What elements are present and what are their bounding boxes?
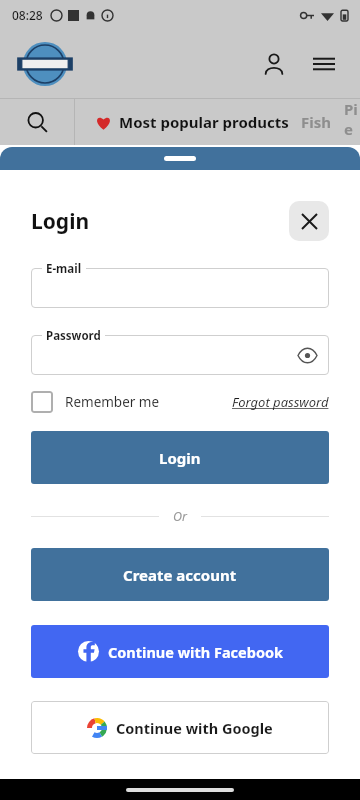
button[interactable]: Login [31,431,329,484]
staticText: Fish [301,112,332,132]
button[interactable]: Search [0,99,74,145]
staticText: Forgot password [232,393,329,411]
button[interactable] [31,268,329,308]
button[interactable]: Continue with Facebook [31,625,329,678]
staticText: 08:28 [12,7,43,23]
staticText: Continue with Google [116,718,273,738]
staticText: Continue with Facebook [108,642,283,662]
button[interactable]: Forgot password [232,393,329,411]
button[interactable]: Create account [31,548,329,601]
button[interactable]: Menu [304,44,344,84]
staticText: Create account [123,565,237,585]
staticText: Login [31,207,90,236]
button[interactable]: Continue with Google [31,701,329,754]
staticText: Or [173,508,187,525]
button[interactable]: Close [289,201,329,241]
button[interactable]: Show password [295,343,319,367]
button[interactable]: Remember me [31,391,160,413]
button[interactable] [31,335,329,375]
button[interactable]: Account [254,44,294,84]
staticText: Login [159,448,201,468]
staticText: Remember me [65,393,160,411]
staticText: Most popular products [119,112,289,132]
staticText: E-mail [46,261,82,277]
staticText: Pies [344,99,360,145]
staticText: Password [46,328,101,344]
